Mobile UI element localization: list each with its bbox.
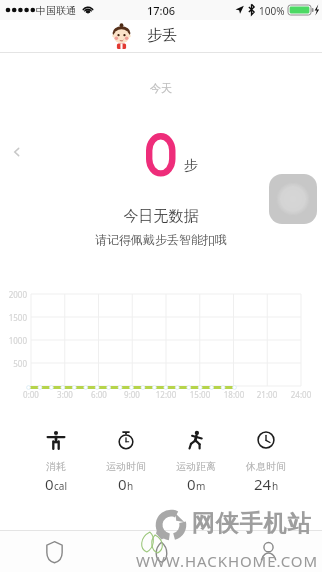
staticText: 9:00 bbox=[118, 389, 146, 400]
button[interactable]: Device bbox=[269, 174, 317, 224]
staticText: cal bbox=[54, 479, 67, 493]
button[interactable]: Profile bbox=[215, 531, 322, 572]
staticText: h bbox=[272, 479, 279, 493]
staticText: 0 bbox=[118, 474, 127, 494]
staticText: 网侠手机站 bbox=[191, 509, 311, 538]
staticText: 今天 bbox=[0, 81, 322, 95]
staticText: 18:00 bbox=[220, 389, 248, 400]
staticText: 请记得佩戴步丢智能扣哦 bbox=[0, 232, 322, 247]
staticText: 步丢 bbox=[147, 26, 177, 45]
button[interactable]: 运动距离 bbox=[161, 431, 231, 494]
button[interactable]: 运动时间 bbox=[91, 431, 161, 494]
staticText: WWW.HACKHOME.COM bbox=[136, 551, 319, 571]
staticText: 运动距离 bbox=[176, 460, 216, 473]
staticText: 24 bbox=[254, 474, 272, 494]
staticText: 1000 bbox=[1, 335, 27, 346]
staticText: 运动时间 bbox=[106, 460, 146, 473]
staticText: 步 bbox=[184, 157, 198, 175]
staticText: 15:00 bbox=[186, 389, 214, 400]
staticText: 21:00 bbox=[253, 389, 281, 400]
staticText: 6:00 bbox=[85, 389, 113, 400]
staticText: 休息时间 bbox=[246, 460, 286, 473]
staticText: 1500 bbox=[1, 312, 27, 323]
staticText: h bbox=[127, 479, 134, 493]
staticText: 2000 bbox=[1, 289, 27, 300]
button[interactable]: Previous day bbox=[10, 145, 24, 159]
button[interactable]: 消耗 bbox=[21, 431, 91, 494]
staticText: 3:00 bbox=[51, 389, 79, 400]
staticText: 500 bbox=[1, 358, 27, 369]
staticText: m bbox=[196, 479, 206, 493]
staticText: 中国联通 bbox=[36, 4, 76, 17]
staticText: 100% bbox=[259, 4, 285, 18]
staticText: 0 bbox=[187, 474, 196, 494]
staticText: 17:06 bbox=[0, 3, 322, 18]
staticText: 0 bbox=[45, 474, 54, 494]
button[interactable]: Steps bbox=[108, 531, 215, 572]
staticText: 12:00 bbox=[152, 389, 180, 400]
staticText: 24:00 bbox=[287, 389, 315, 400]
staticText: 今日无数据 bbox=[0, 207, 322, 226]
button[interactable]: Protection bbox=[0, 531, 108, 572]
button[interactable]: 休息时间 bbox=[231, 431, 301, 494]
staticText: 消耗 bbox=[46, 460, 66, 473]
staticText: 0:00 bbox=[17, 389, 45, 400]
